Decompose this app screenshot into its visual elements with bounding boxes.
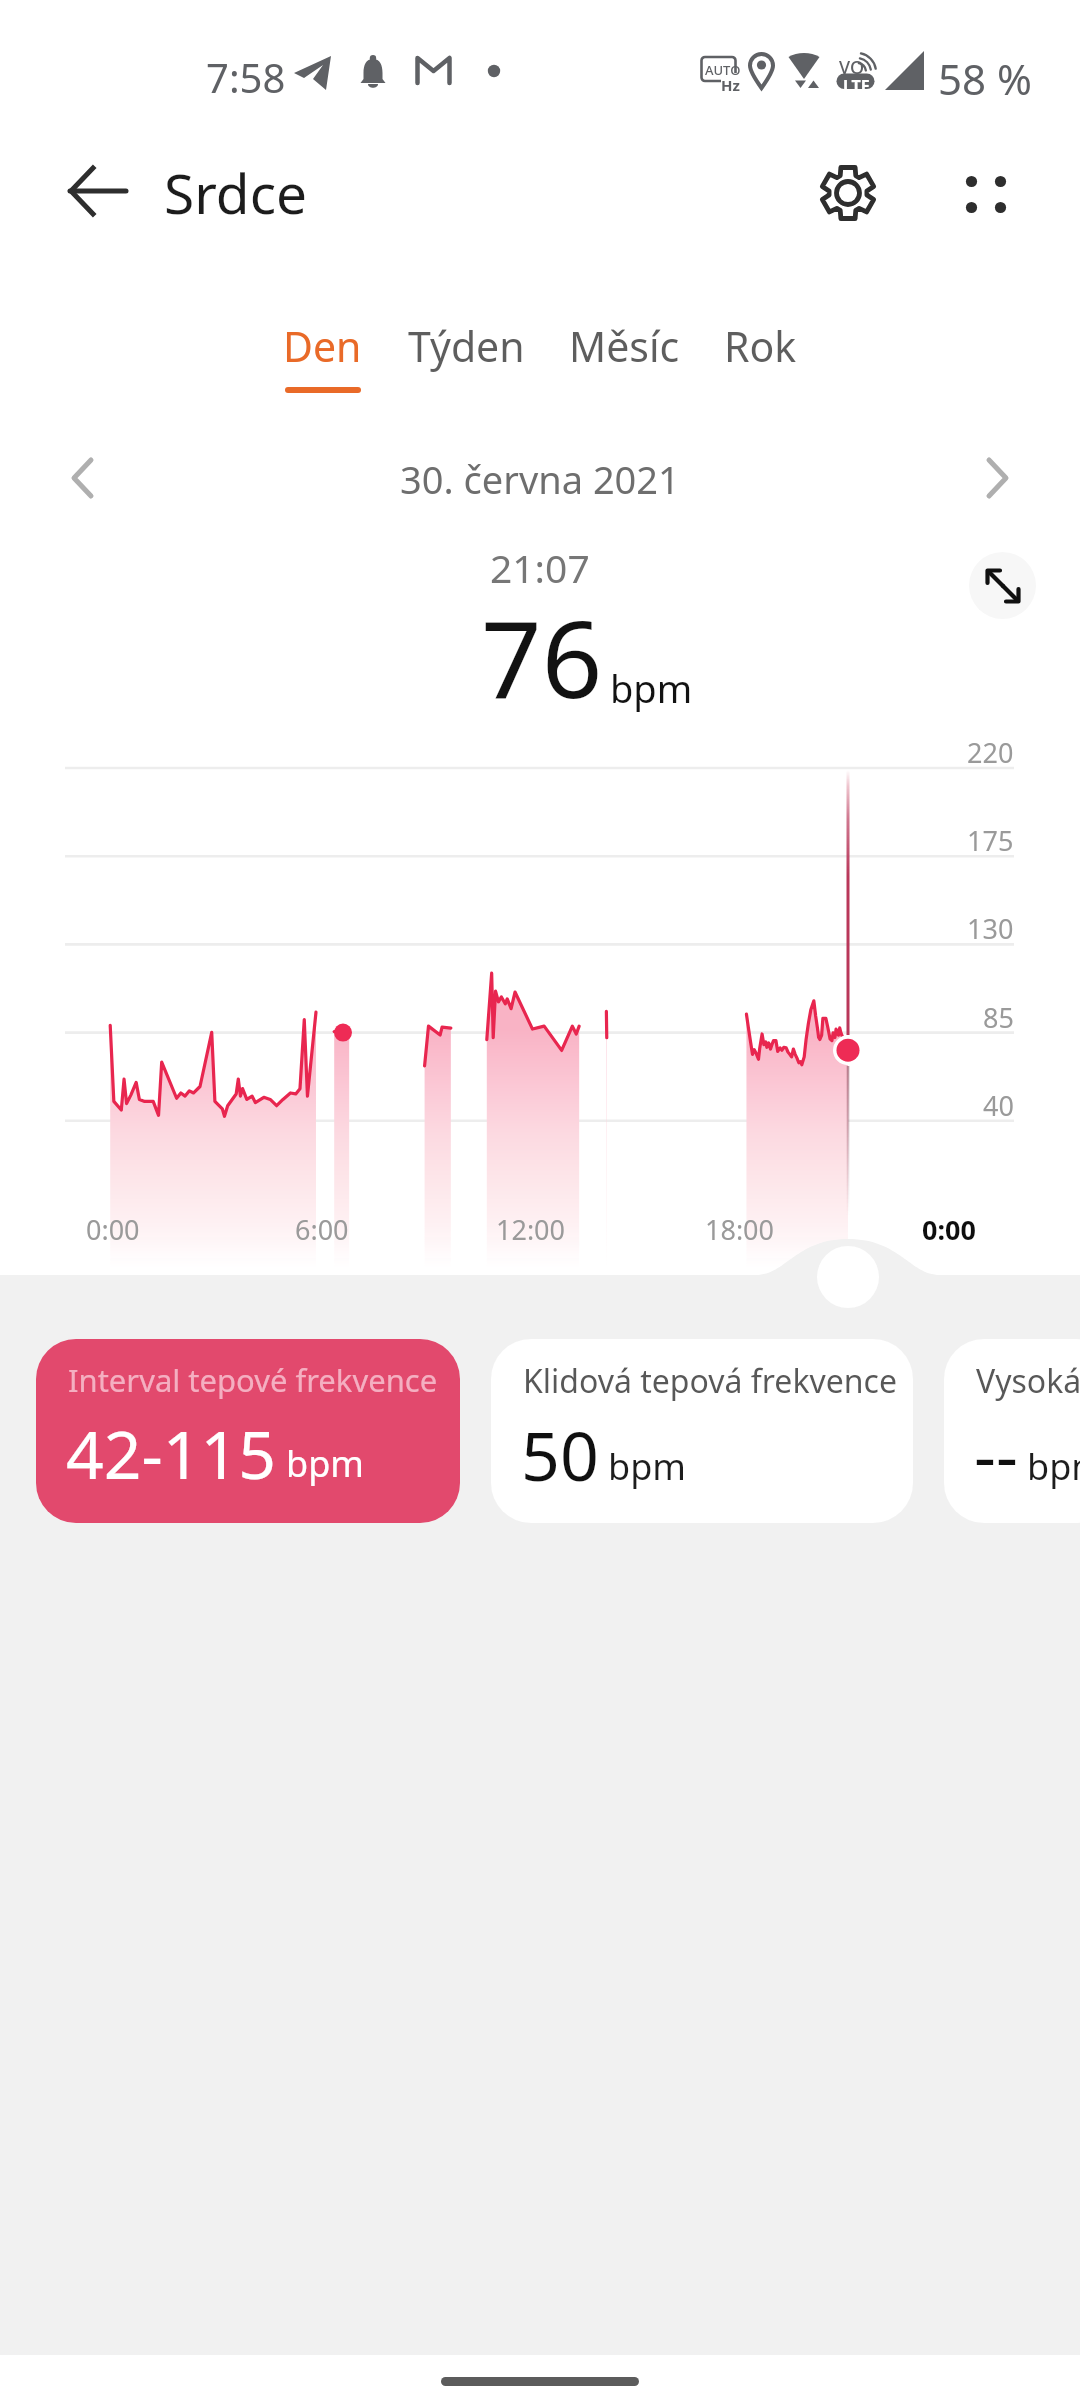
staticText: 42-115 xyxy=(66,1408,277,1498)
button[interactable]: Next day xyxy=(958,441,1032,515)
button[interactable]: Den xyxy=(283,318,362,393)
staticText: 21:07 xyxy=(490,541,590,594)
button[interactable]: Měsíc xyxy=(569,318,680,393)
button[interactable]: More options xyxy=(940,147,1032,239)
staticText: Hz xyxy=(721,75,740,95)
staticText: Interval tepové frekvence xyxy=(68,1359,438,1401)
staticText: 76 xyxy=(481,585,603,729)
staticText: VO xyxy=(839,55,865,80)
staticText: 18:00 xyxy=(705,1211,775,1248)
button[interactable]: Vysoká tepová frekvence xyxy=(944,1339,1080,1523)
button[interactable]: Týden xyxy=(408,318,525,393)
staticText: bpm xyxy=(286,1439,364,1488)
staticText: 85 xyxy=(983,999,1014,1036)
staticText: bpm xyxy=(608,1442,686,1491)
button[interactable]: Settings xyxy=(802,147,894,239)
staticText: 220 xyxy=(967,734,1014,771)
button[interactable]: Expand chart xyxy=(969,552,1036,619)
staticText: 30. června 2021 xyxy=(400,453,680,505)
button[interactable]: Back xyxy=(50,143,146,239)
staticText: 175 xyxy=(967,822,1014,859)
staticText: Rok xyxy=(724,318,797,374)
staticText: bpm xyxy=(1027,1442,1080,1491)
staticText: LTE xyxy=(843,75,870,97)
button[interactable]: Previous day xyxy=(48,441,122,515)
staticText: Den xyxy=(283,318,362,374)
staticText: -- xyxy=(974,1408,1018,1501)
staticText: 0:00 xyxy=(86,1211,140,1248)
staticText: 58 % xyxy=(938,50,1032,107)
staticText: Vysoká tepová frekvence xyxy=(976,1359,1080,1403)
staticText: 50 xyxy=(521,1408,599,1501)
staticText: Srdce xyxy=(164,155,308,230)
staticText: 0:00 xyxy=(922,1211,976,1248)
button[interactable]: Interval tepové frekvence xyxy=(36,1339,460,1523)
staticText: 40 xyxy=(983,1087,1014,1124)
button[interactable]: Klidová tepová frekvence xyxy=(491,1339,913,1523)
staticText: Klidová tepová frekvence xyxy=(523,1359,897,1403)
staticText: 130 xyxy=(967,910,1014,947)
staticText: 7:58 xyxy=(206,50,286,104)
button[interactable]: Rok xyxy=(724,318,797,393)
staticText: Týden xyxy=(408,318,525,374)
staticText: Měsíc xyxy=(569,318,680,374)
staticText: bpm xyxy=(610,662,693,714)
staticText: 12:00 xyxy=(496,1211,566,1248)
staticText: 6:00 xyxy=(295,1211,349,1248)
staticText: AUTO xyxy=(705,61,741,79)
